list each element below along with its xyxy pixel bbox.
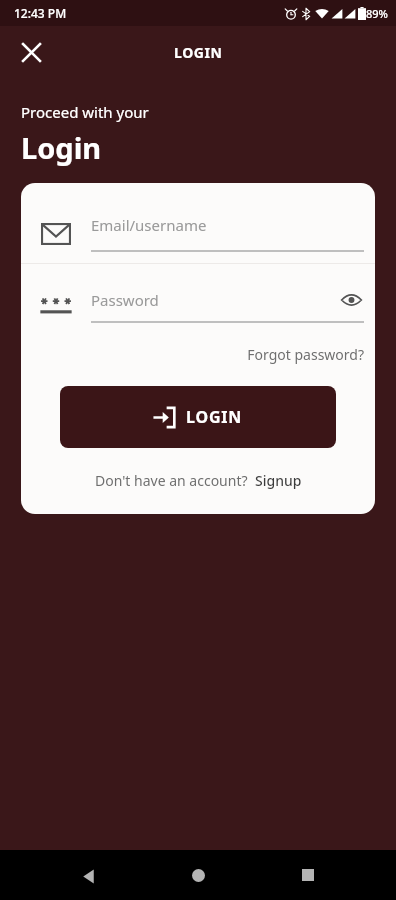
staticText: Email/username bbox=[91, 215, 207, 235]
staticText: Password bbox=[91, 290, 338, 310]
staticText: Don't have an account? bbox=[95, 471, 248, 490]
button[interactable]: Close bbox=[10, 31, 52, 73]
button[interactable]: Password bbox=[21, 287, 375, 323]
staticText: Login bbox=[21, 128, 102, 167]
staticText: 12:43 PM bbox=[14, 5, 67, 21]
staticText: 89% bbox=[366, 6, 388, 21]
button[interactable]: LOGIN bbox=[60, 386, 336, 448]
button[interactable]: Recents bbox=[286, 853, 330, 897]
button[interactable]: Forgot password? bbox=[21, 345, 364, 364]
staticText: LOGIN bbox=[186, 406, 243, 428]
staticText: Signup bbox=[255, 471, 302, 490]
button[interactable]: Home bbox=[176, 853, 220, 897]
button[interactable]: Back bbox=[66, 853, 110, 897]
staticText: Proceed with your bbox=[21, 102, 149, 122]
button[interactable]: Signup bbox=[255, 471, 302, 490]
button[interactable]: Email/username bbox=[21, 215, 375, 252]
button[interactable]: Show password bbox=[338, 287, 364, 313]
staticText: LOGIN bbox=[174, 43, 223, 62]
